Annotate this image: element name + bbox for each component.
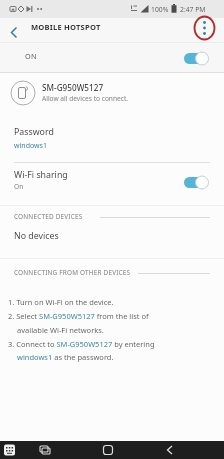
staticText: MOBILE HOTSPOT: [31, 22, 101, 32]
staticText: windows1: [14, 141, 47, 151]
button[interactable]: [38, 443, 52, 457]
button[interactable]: [184, 175, 210, 189]
staticText: On: [14, 182, 24, 191]
staticText: Wi-Fi sharing: [14, 169, 68, 181]
button[interactable]: Wi-Fi sharing: [0, 168, 224, 194]
staticText: CONNECTED DEVICES: [14, 212, 83, 221]
staticText: 3. Connect to SM-G950W5127 by entering: [8, 339, 155, 349]
staticText: ON: [25, 51, 37, 61]
staticText: 100%: [151, 5, 169, 14]
button[interactable]: SM-G950W5127: [0, 74, 224, 114]
staticText: 2:47 PM: [180, 5, 206, 14]
button[interactable]: [2, 20, 26, 44]
staticText: No devices: [14, 230, 59, 242]
staticText: 1. Turn on Wi-Fi on the device.: [8, 297, 114, 307]
staticText: CONNECTING FROM OTHER DEVICES: [14, 268, 131, 277]
staticText: Allow all devices to connect.: [42, 94, 129, 103]
button[interactable]: [3, 443, 17, 457]
button[interactable]: ON: [0, 46, 224, 72]
staticText: available Wi-Fi networks.: [17, 325, 104, 335]
button[interactable]: [163, 443, 177, 457]
staticText: 2. Select SM-G950W5127 from the list of: [8, 311, 149, 321]
staticText: windows1 as the password.: [17, 352, 114, 362]
button[interactable]: [101, 443, 115, 457]
button[interactable]: [184, 51, 210, 65]
staticText: Password: [14, 126, 54, 138]
staticText: SM-G950W5127: [42, 82, 104, 93]
button[interactable]: [192, 16, 216, 40]
button[interactable]: Password: [14, 126, 54, 151]
